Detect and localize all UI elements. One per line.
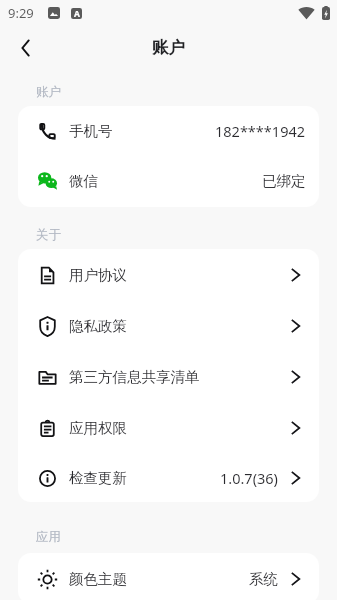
staticText: 检查更新: [69, 469, 127, 487]
staticText: 第三方信息共享清单: [69, 368, 200, 386]
button[interactable]: 应用权限: [18, 402, 319, 453]
button[interactable]: 隐私政策: [18, 300, 319, 351]
staticText: 微信: [69, 172, 98, 190]
staticText: 1.0.7(36): [220, 468, 278, 488]
button[interactable]: 微信: [18, 156, 319, 206]
staticText: 应用权限: [69, 419, 127, 437]
staticText: 手机号: [69, 122, 113, 140]
button[interactable]: 检查更新: [18, 453, 319, 502]
button[interactable]: 手机号: [18, 106, 319, 156]
button[interactable]: 第三方信息共享清单: [18, 351, 319, 402]
staticText: 已绑定: [262, 172, 306, 190]
staticText: 颜色主题: [69, 570, 127, 588]
staticText: 应用: [36, 529, 61, 545]
staticText: 9:29: [8, 4, 34, 22]
staticText: 账户: [152, 37, 185, 58]
staticText: 隐私政策: [69, 317, 127, 335]
staticText: A: [74, 8, 80, 19]
staticText: 关于: [36, 227, 61, 243]
button[interactable]: 用户协议: [18, 249, 319, 300]
staticText: 账户: [36, 84, 61, 100]
button[interactable]: Back: [6, 29, 44, 67]
button[interactable]: 颜色主题: [18, 553, 319, 600]
staticText: 182****1942: [215, 121, 306, 141]
staticText: 用户协议: [69, 266, 127, 284]
staticText: 系统: [249, 570, 278, 588]
